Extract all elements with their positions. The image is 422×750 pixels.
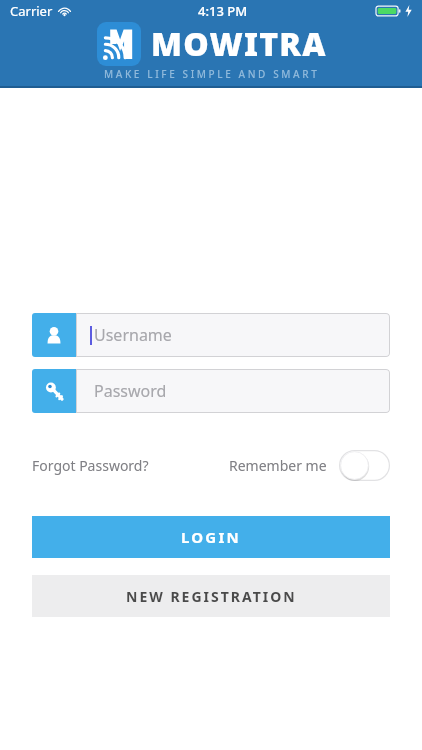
button[interactable]: NEW REGISTRATION — [32, 575, 390, 617]
staticText: Carrier — [10, 2, 53, 20]
staticText: Username — [94, 324, 172, 346]
staticText: Forgot Password? — [32, 456, 149, 475]
staticText: Remember me — [229, 456, 327, 475]
staticText: 4:13 PM — [198, 2, 248, 20]
button[interactable]: Remember me — [229, 448, 390, 483]
staticText: NEW REGISTRATION — [126, 587, 297, 606]
button[interactable]: Forgot Password? — [32, 452, 149, 479]
staticText: MOWITRA — [151, 22, 327, 66]
button[interactable]: LOGIN — [32, 516, 390, 558]
button[interactable]: Password — [32, 369, 390, 413]
staticText: MAKE LIFE SIMPLE AND SMART — [104, 67, 320, 81]
staticText: Password — [94, 380, 167, 402]
button[interactable]: Remember me toggle — [339, 450, 390, 481]
staticText: LOGIN — [181, 527, 241, 547]
button[interactable]: Username — [32, 313, 390, 357]
